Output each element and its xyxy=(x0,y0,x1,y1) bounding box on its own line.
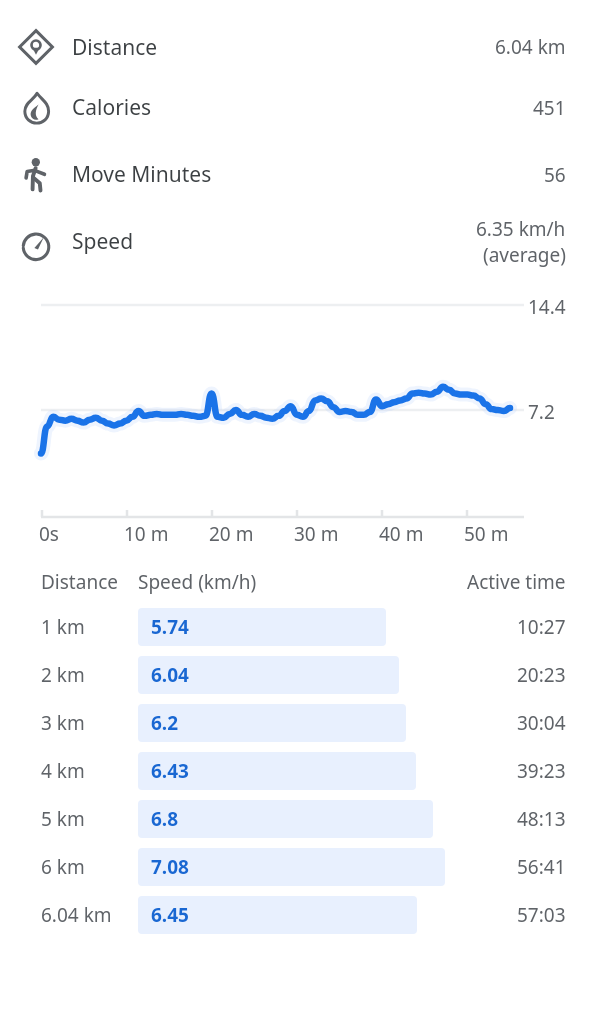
staticText: 5 km xyxy=(41,806,85,832)
staticText: 7.2 xyxy=(528,399,555,425)
staticText: 6.35 km/h xyxy=(476,216,566,242)
staticText: 39:23 xyxy=(517,758,566,784)
staticText: 7.08 xyxy=(151,854,189,880)
staticText: Distance xyxy=(72,33,158,62)
staticText: 10:27 xyxy=(517,614,566,640)
button[interactable]: 4 km xyxy=(0,747,606,795)
staticText: 14.4 xyxy=(528,294,566,320)
button[interactable]: Speed xyxy=(0,208,606,275)
button[interactable]: 6 km xyxy=(0,843,606,891)
staticText: 50 m xyxy=(464,521,509,547)
other: Distance xyxy=(18,29,54,65)
staticText: 1 km xyxy=(41,614,85,640)
staticText: 451 xyxy=(533,95,566,121)
staticText: 48:13 xyxy=(517,806,566,832)
staticText: 6.45 xyxy=(151,902,189,928)
staticText: Speed xyxy=(72,227,134,256)
staticText: 57:03 xyxy=(517,902,566,928)
staticText: 0s xyxy=(39,521,59,547)
staticText: 56 xyxy=(544,162,566,188)
staticText: 6.04 xyxy=(151,662,189,688)
staticText: 4 km xyxy=(41,758,85,784)
staticText: 30 m xyxy=(294,521,339,547)
button[interactable]: 5 km xyxy=(0,795,606,843)
button[interactable]: 6.04 km xyxy=(0,891,606,939)
staticText: 6.43 xyxy=(151,758,189,784)
staticText: Speed (km/h) xyxy=(138,569,257,595)
staticText: 6.2 xyxy=(151,710,179,736)
staticText: 30:04 xyxy=(517,710,566,736)
staticText: 2 km xyxy=(41,662,85,688)
staticText: 6 km xyxy=(41,854,85,880)
staticText: 10 m xyxy=(124,521,169,547)
button[interactable]: Calories xyxy=(0,74,606,141)
staticText: 56:41 xyxy=(517,854,566,880)
button[interactable]: 2 km xyxy=(0,651,606,699)
other: Speed xyxy=(18,224,54,260)
staticText: 20:23 xyxy=(517,662,566,688)
button[interactable]: Distance xyxy=(0,20,606,74)
staticText: Active time xyxy=(467,569,566,595)
button[interactable]: Move Minutes xyxy=(0,141,606,208)
staticText: 6.04 km xyxy=(41,902,112,928)
staticText: 5.74 xyxy=(151,614,189,640)
staticText: 6.04 km xyxy=(495,34,566,60)
staticText: Calories xyxy=(72,93,152,122)
staticText: 40 m xyxy=(379,521,424,547)
staticText: 3 km xyxy=(41,710,85,736)
staticText: 6.8 xyxy=(151,806,179,832)
staticText: 20 m xyxy=(209,521,254,547)
staticText: (average) xyxy=(483,242,566,268)
other: Calories xyxy=(18,90,54,126)
other: Move Minutes xyxy=(18,157,54,193)
staticText: Distance xyxy=(41,569,118,595)
button[interactable]: 1 km xyxy=(0,603,606,651)
staticText: Move Minutes xyxy=(72,160,212,189)
button[interactable]: 3 km xyxy=(0,699,606,747)
